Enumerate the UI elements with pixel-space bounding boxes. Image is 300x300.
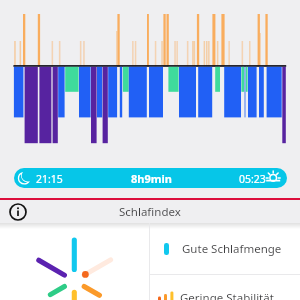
button[interactable]: Geringe Stabilität	[150, 275, 300, 300]
staticText: 05:23	[239, 172, 266, 186]
button[interactable]: Gute Schlafmenge	[150, 223, 300, 274]
staticText: Gute Schlafmenge	[182, 241, 282, 257]
button[interactable]: 21:15	[14, 168, 287, 188]
staticText: 21:15	[36, 172, 63, 186]
staticText: Schlafindex	[119, 204, 181, 220]
button[interactable]: Info	[4, 200, 32, 223]
staticText: Geringe Stabilität	[180, 290, 274, 300]
staticText: 8h9min	[131, 171, 172, 186]
button[interactable]	[0, 223, 149, 300]
